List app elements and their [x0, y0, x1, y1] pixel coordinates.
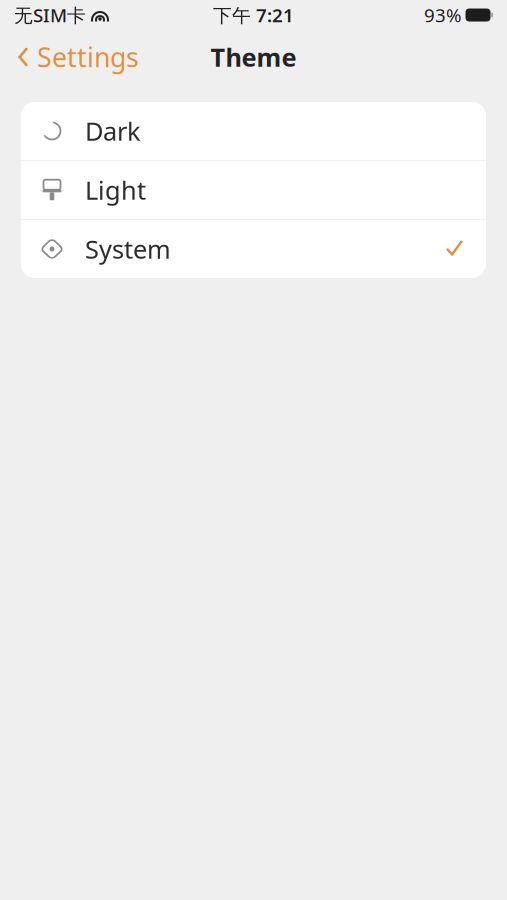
- staticText: Theme: [210, 40, 296, 74]
- button[interactable]: Dark: [21, 102, 486, 160]
- staticText: 下午 7:21: [213, 3, 294, 27]
- staticText: Dark: [85, 114, 141, 148]
- staticText: 93%: [424, 3, 462, 27]
- staticText: 无SIM卡: [14, 3, 86, 27]
- button[interactable]: System: [21, 220, 486, 278]
- button[interactable]: Light: [21, 161, 486, 219]
- button[interactable]: Settings: [0, 33, 149, 81]
- staticText: Settings: [37, 39, 139, 75]
- staticText: Light: [85, 173, 146, 207]
- staticText: System: [85, 232, 171, 266]
